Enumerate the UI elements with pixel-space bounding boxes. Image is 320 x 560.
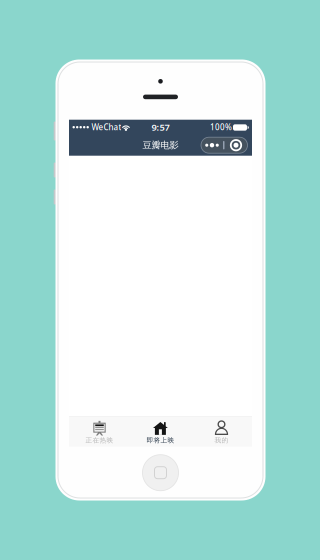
staticText: WeChat [91,122,121,132]
staticText: 即将上映 [146,436,174,444]
staticText: 9:57 [151,121,169,133]
button[interactable]: 即将上映 [130,417,191,447]
staticText: 100% [210,122,232,132]
button[interactable]: More and close [201,137,247,153]
staticText: 我的 [214,436,228,444]
button[interactable]: 正在热映 [69,417,130,447]
staticText: 正在热映 [85,436,113,444]
staticText: 豆瓣电影 [142,139,178,151]
button[interactable]: 我的 [191,417,252,447]
